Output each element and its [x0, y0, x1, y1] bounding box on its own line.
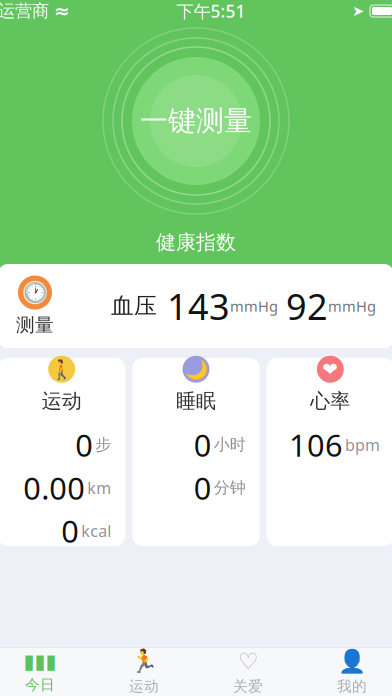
staticText: [238, 511, 246, 550]
staticText: kcal: [81, 520, 111, 541]
staticText: mmHg: [230, 296, 278, 316]
staticText: 106: [289, 424, 343, 465]
button[interactable]: 🏃: [92, 648, 196, 696]
staticText: 下午5:51: [176, 0, 245, 22]
staticText: 睡眠: [176, 389, 216, 413]
staticText: 🌙: [184, 359, 207, 380]
staticText: km: [87, 477, 111, 498]
staticText: 🕐: [23, 282, 46, 303]
staticText: 92: [286, 282, 328, 330]
staticText: ≈: [54, 0, 70, 22]
staticText: 运动: [42, 389, 82, 413]
staticText: mmHg: [328, 296, 376, 316]
button[interactable]: 🚶: [0, 358, 125, 546]
staticText: 小时: [214, 435, 246, 455]
staticText: 0: [61, 510, 79, 551]
staticText: 心率: [310, 389, 350, 413]
staticText: 70: [115, 310, 133, 331]
staticText: 分钟: [214, 478, 246, 498]
staticText: 🚶: [50, 359, 73, 380]
button[interactable]: ❤: [267, 358, 392, 546]
staticText: 测量: [16, 313, 54, 336]
staticText: 👤: [338, 648, 366, 674]
staticText: 0: [75, 424, 93, 465]
staticText: 关爱: [233, 677, 263, 695]
button[interactable]: ▮▮▮: [0, 648, 92, 696]
staticText: 运营商: [0, 0, 49, 22]
staticText: 143: [167, 282, 230, 330]
button[interactable]: 👤: [300, 648, 392, 696]
staticText: ▮▮▮: [23, 650, 56, 673]
staticText: 0: [194, 467, 212, 508]
button[interactable]: 🌙: [132, 358, 260, 546]
button[interactable]: 🕐: [0, 264, 392, 348]
staticText: [372, 511, 380, 550]
staticText: 0.00: [23, 467, 85, 508]
button[interactable]: 一键测量: [101, 26, 291, 216]
staticText: ♡: [238, 649, 258, 674]
staticText: 运动: [129, 677, 159, 695]
staticText: bpm: [345, 434, 380, 455]
staticText: ❤: [322, 359, 338, 380]
staticText: --: [30, 269, 38, 286]
staticText: 健康指数: [156, 230, 236, 255]
staticText: 🏃: [130, 648, 158, 674]
staticText: 90: [223, 310, 241, 331]
staticText: 一键测量: [140, 104, 252, 138]
staticText: 我的: [337, 677, 367, 695]
staticText: 步: [95, 435, 111, 455]
button[interactable]: ♡: [196, 648, 300, 696]
staticText: 良好: [162, 311, 194, 331]
staticText: ➤: [352, 3, 364, 19]
staticText: 0: [194, 424, 212, 465]
staticText: 今日: [25, 676, 55, 694]
staticText: 优秀: [270, 311, 302, 331]
staticText: 血压: [111, 292, 157, 320]
